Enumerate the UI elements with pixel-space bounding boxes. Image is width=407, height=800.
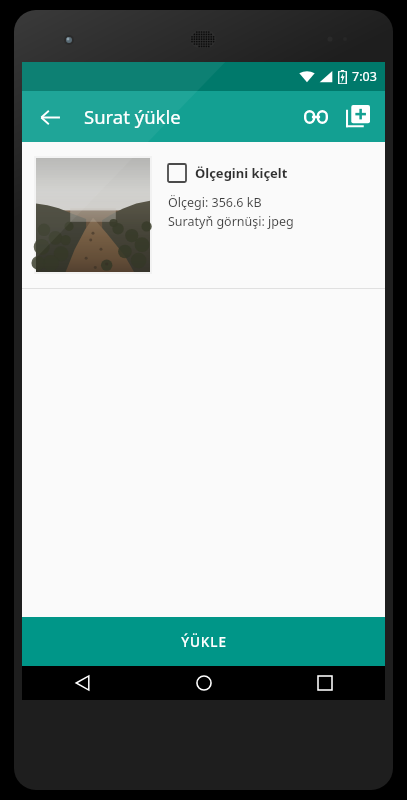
staticText: 7:03 — [352, 68, 377, 85]
staticText: Surat ýükle — [84, 104, 181, 129]
button[interactable]: Back — [30, 97, 70, 137]
button[interactable]: Recent apps — [264, 666, 385, 700]
button[interactable]: Ölçegini kiçelt — [168, 162, 294, 184]
button[interactable]: Add photo — [337, 96, 379, 138]
staticText: Ölçegi: 356.6 kB — [168, 194, 262, 211]
staticText: ÝÜKLE — [181, 633, 227, 651]
button[interactable]: ÝÜKLE — [22, 617, 385, 666]
staticText: Suratyň görnüşi: jpeg — [168, 213, 294, 230]
button[interactable]: Back — [22, 666, 143, 700]
button[interactable]: Home — [143, 666, 264, 700]
button[interactable]: Copy link — [295, 96, 337, 138]
staticText: Ölçegini kiçelt — [195, 164, 288, 182]
